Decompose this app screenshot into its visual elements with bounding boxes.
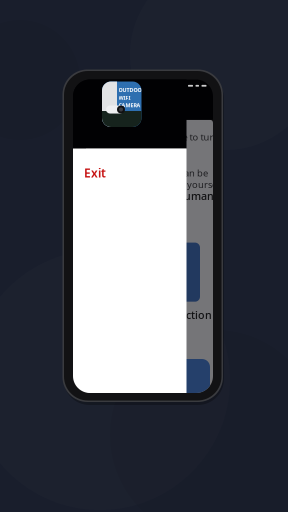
button[interactable]: Exit xyxy=(73,148,186,393)
staticText: CAMERA xyxy=(118,102,140,109)
staticText: Exit xyxy=(84,165,106,181)
staticText: Please make sure to turn off xyxy=(113,131,233,143)
staticText: Function xyxy=(166,308,212,322)
staticText: WIFI xyxy=(118,94,130,101)
staticText: the power before it can be adjuted xyxy=(97,167,208,192)
staticText: OUTDOOR xyxy=(118,86,144,94)
staticText: or replaced by yourself. xyxy=(123,178,225,191)
staticText: Smart Humane xyxy=(142,189,220,203)
